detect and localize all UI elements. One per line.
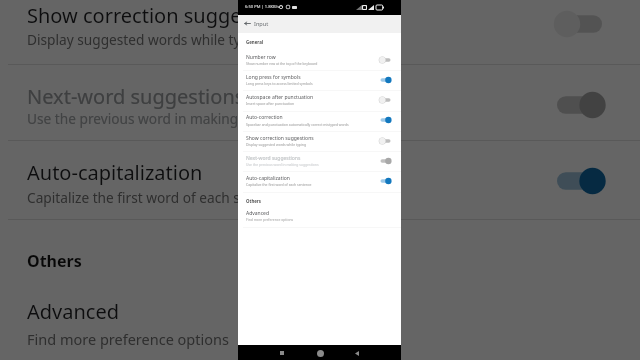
staticText: Insert space after punctuation — [246, 101, 295, 106]
button[interactable]: Toggle — [377, 114, 393, 126]
staticText: Capitalize the first word of each senten… — [27, 188, 292, 207]
staticText: General — [246, 39, 264, 45]
button[interactable]: Toggle — [377, 135, 393, 147]
staticText: Show number row at the top of the keyboa… — [246, 61, 318, 66]
staticText: Auto-capitalization — [27, 159, 203, 186]
staticText: Auto-capitalization — [246, 175, 290, 182]
button[interactable]: Home — [314, 347, 326, 359]
staticText: Next-word suggestions — [27, 83, 245, 110]
button[interactable]: Toggle — [377, 155, 393, 167]
button[interactable] — [238, 71, 401, 91]
button[interactable] — [238, 173, 401, 193]
button[interactable]: Toggle — [377, 94, 393, 106]
staticText: Autospace after punctuation — [246, 94, 313, 101]
staticText: Long press keys to access limited symbol… — [246, 81, 313, 86]
button[interactable]: Toggle — [377, 74, 393, 86]
staticText: Use the previous word in making suggesti… — [246, 162, 319, 167]
staticText: 6:50 PM | 1.8KB/s — [245, 4, 280, 10]
staticText: Show correction suggestions — [246, 135, 314, 142]
button[interactable]: Back — [241, 17, 254, 30]
button[interactable]: Back — [351, 347, 363, 359]
button[interactable] — [238, 112, 401, 132]
staticText: Display suggested words while typing — [246, 142, 307, 147]
staticText: Find more preference options — [27, 329, 229, 349]
staticText: Capitalize the first word of each senten… — [246, 182, 312, 187]
staticText: Find more preference options — [246, 217, 294, 222]
staticText: Advanced — [27, 298, 119, 325]
staticText: Others — [246, 198, 262, 204]
button[interactable]: Toggle — [377, 54, 393, 66]
button[interactable]: Toggle — [377, 175, 393, 187]
button[interactable]: Recent apps — [276, 347, 288, 359]
staticText: Others — [27, 250, 82, 272]
button[interactable] — [238, 51, 401, 71]
staticText: Spacebar and punctuation automatically c… — [246, 122, 349, 127]
staticText: Show correction suggestions — [27, 2, 298, 29]
button[interactable] — [238, 152, 401, 172]
staticText: Next-word suggestions — [246, 155, 301, 162]
staticText: Auto-correction — [246, 114, 283, 121]
button[interactable] — [238, 92, 401, 112]
staticText: Display suggested words while typing — [27, 30, 270, 49]
button[interactable] — [238, 206, 401, 224]
staticText: Number row — [246, 54, 276, 61]
staticText: Input — [254, 20, 269, 28]
staticText: Long press for symbols — [246, 74, 301, 81]
staticText: Use the previous word in making suggesti… — [27, 109, 320, 128]
staticText: Advanced — [246, 210, 270, 217]
button[interactable] — [238, 132, 401, 152]
